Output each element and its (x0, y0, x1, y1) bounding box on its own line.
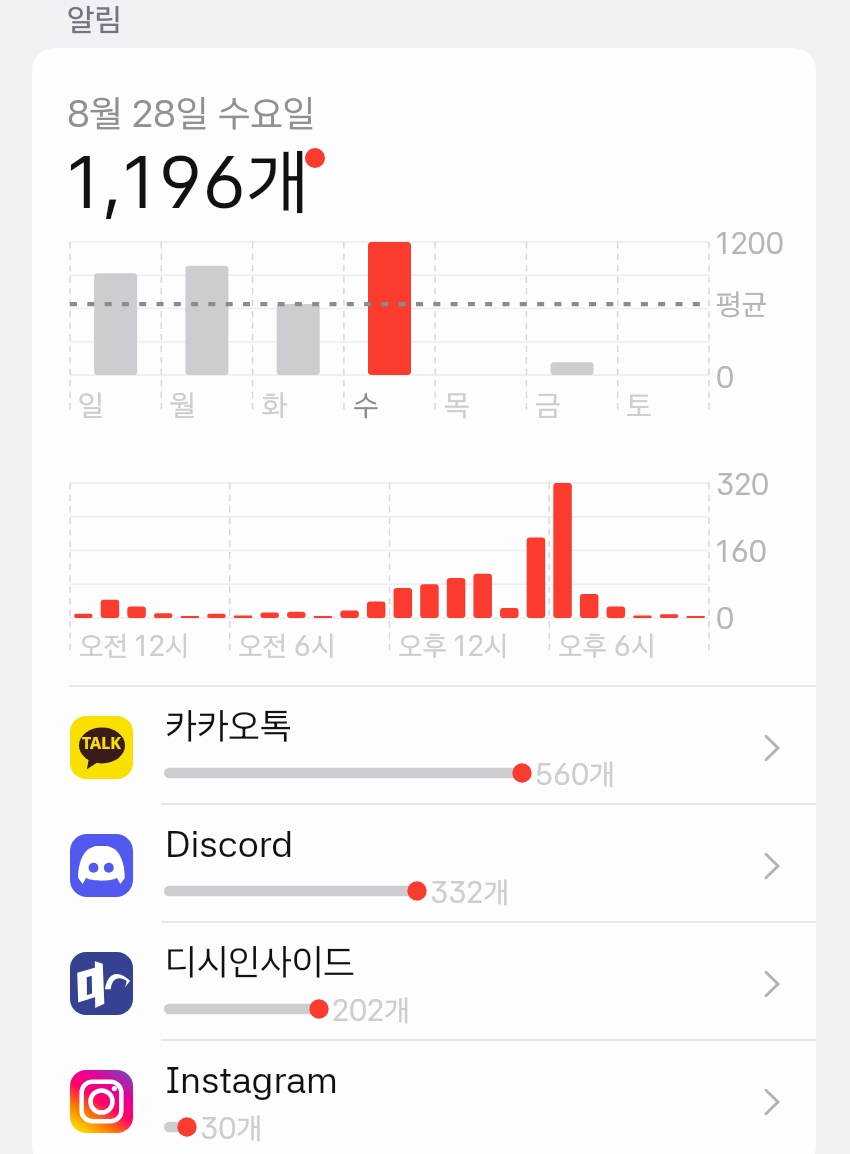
staticText: 토 (626, 387, 652, 423)
staticText: 오후 6시 (558, 629, 656, 663)
staticText: 560개 (535, 756, 615, 792)
staticText: 30개 (200, 1110, 262, 1146)
staticText: 오전 6시 (238, 629, 336, 663)
button[interactable]: Discord (32, 805, 816, 923)
staticText: 160 (716, 533, 767, 569)
staticText: 목 (444, 387, 470, 423)
staticText: 평균 (716, 286, 768, 322)
other: Open 카카오톡 (748, 724, 796, 772)
staticText: 202개 (332, 992, 410, 1028)
staticText: 디시인사이드 (165, 940, 356, 984)
staticText: 알림 (67, 1, 122, 39)
staticText: 1200 (716, 225, 784, 261)
staticText: 월 (170, 387, 196, 423)
staticText: 1,196개 (67, 139, 309, 226)
button[interactable]: 디시인사이드 (32, 923, 816, 1041)
other: Open Discord (748, 842, 796, 890)
staticText: 320 (716, 466, 770, 502)
staticText: Discord (165, 822, 294, 866)
staticText: 카카오톡 (165, 704, 292, 748)
staticText: 오후 12시 (398, 629, 509, 663)
staticText: 일 (78, 387, 104, 423)
staticText: 화 (262, 387, 288, 423)
button[interactable]: TALK (32, 687, 816, 805)
staticText: 0 (716, 359, 735, 395)
staticText: 8월 28일 수요일 (67, 91, 316, 136)
other: Open 디시인사이드 (748, 960, 796, 1008)
staticText: 332개 (430, 874, 509, 910)
staticText: 오전 12시 (79, 629, 190, 663)
button[interactable]: Instagram (32, 1041, 816, 1154)
staticText: TALK (82, 732, 121, 754)
staticText: Instagram (165, 1058, 338, 1102)
staticText: 수 (353, 387, 379, 423)
staticText: 0 (716, 600, 735, 636)
other: Open Instagram (748, 1078, 796, 1126)
staticText: 금 (535, 387, 561, 423)
